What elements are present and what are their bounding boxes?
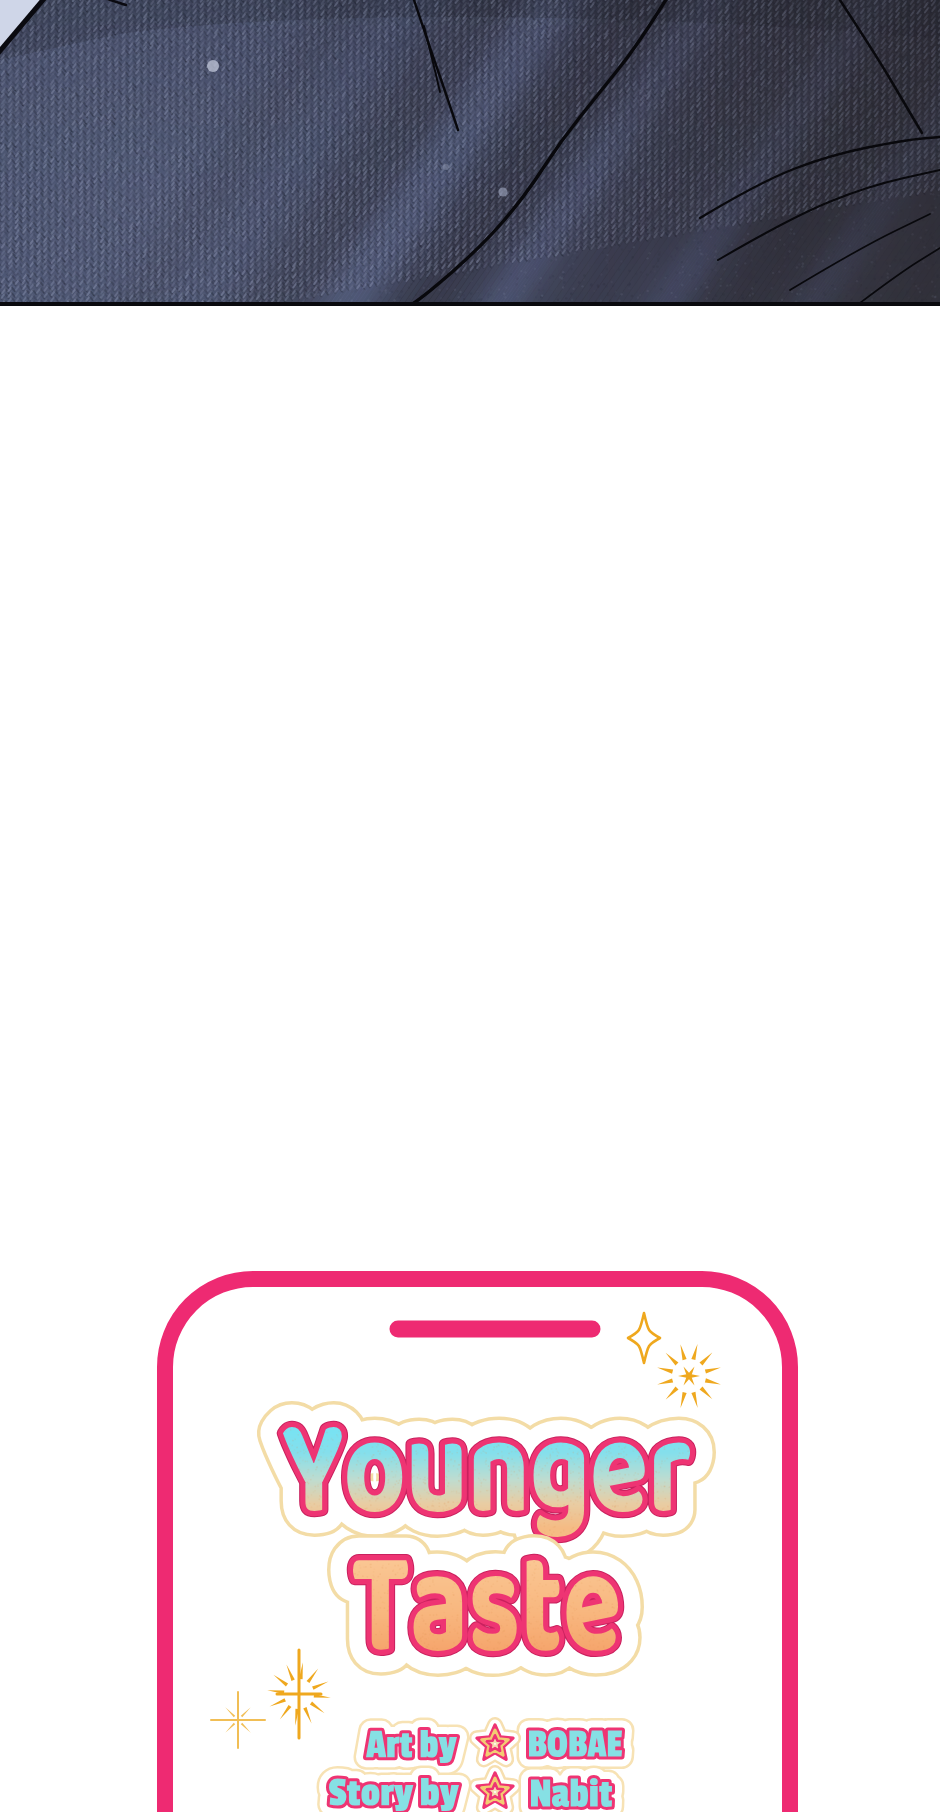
button[interactable]: Younger Taste webtoon episode page: [0, 0, 940, 1812]
